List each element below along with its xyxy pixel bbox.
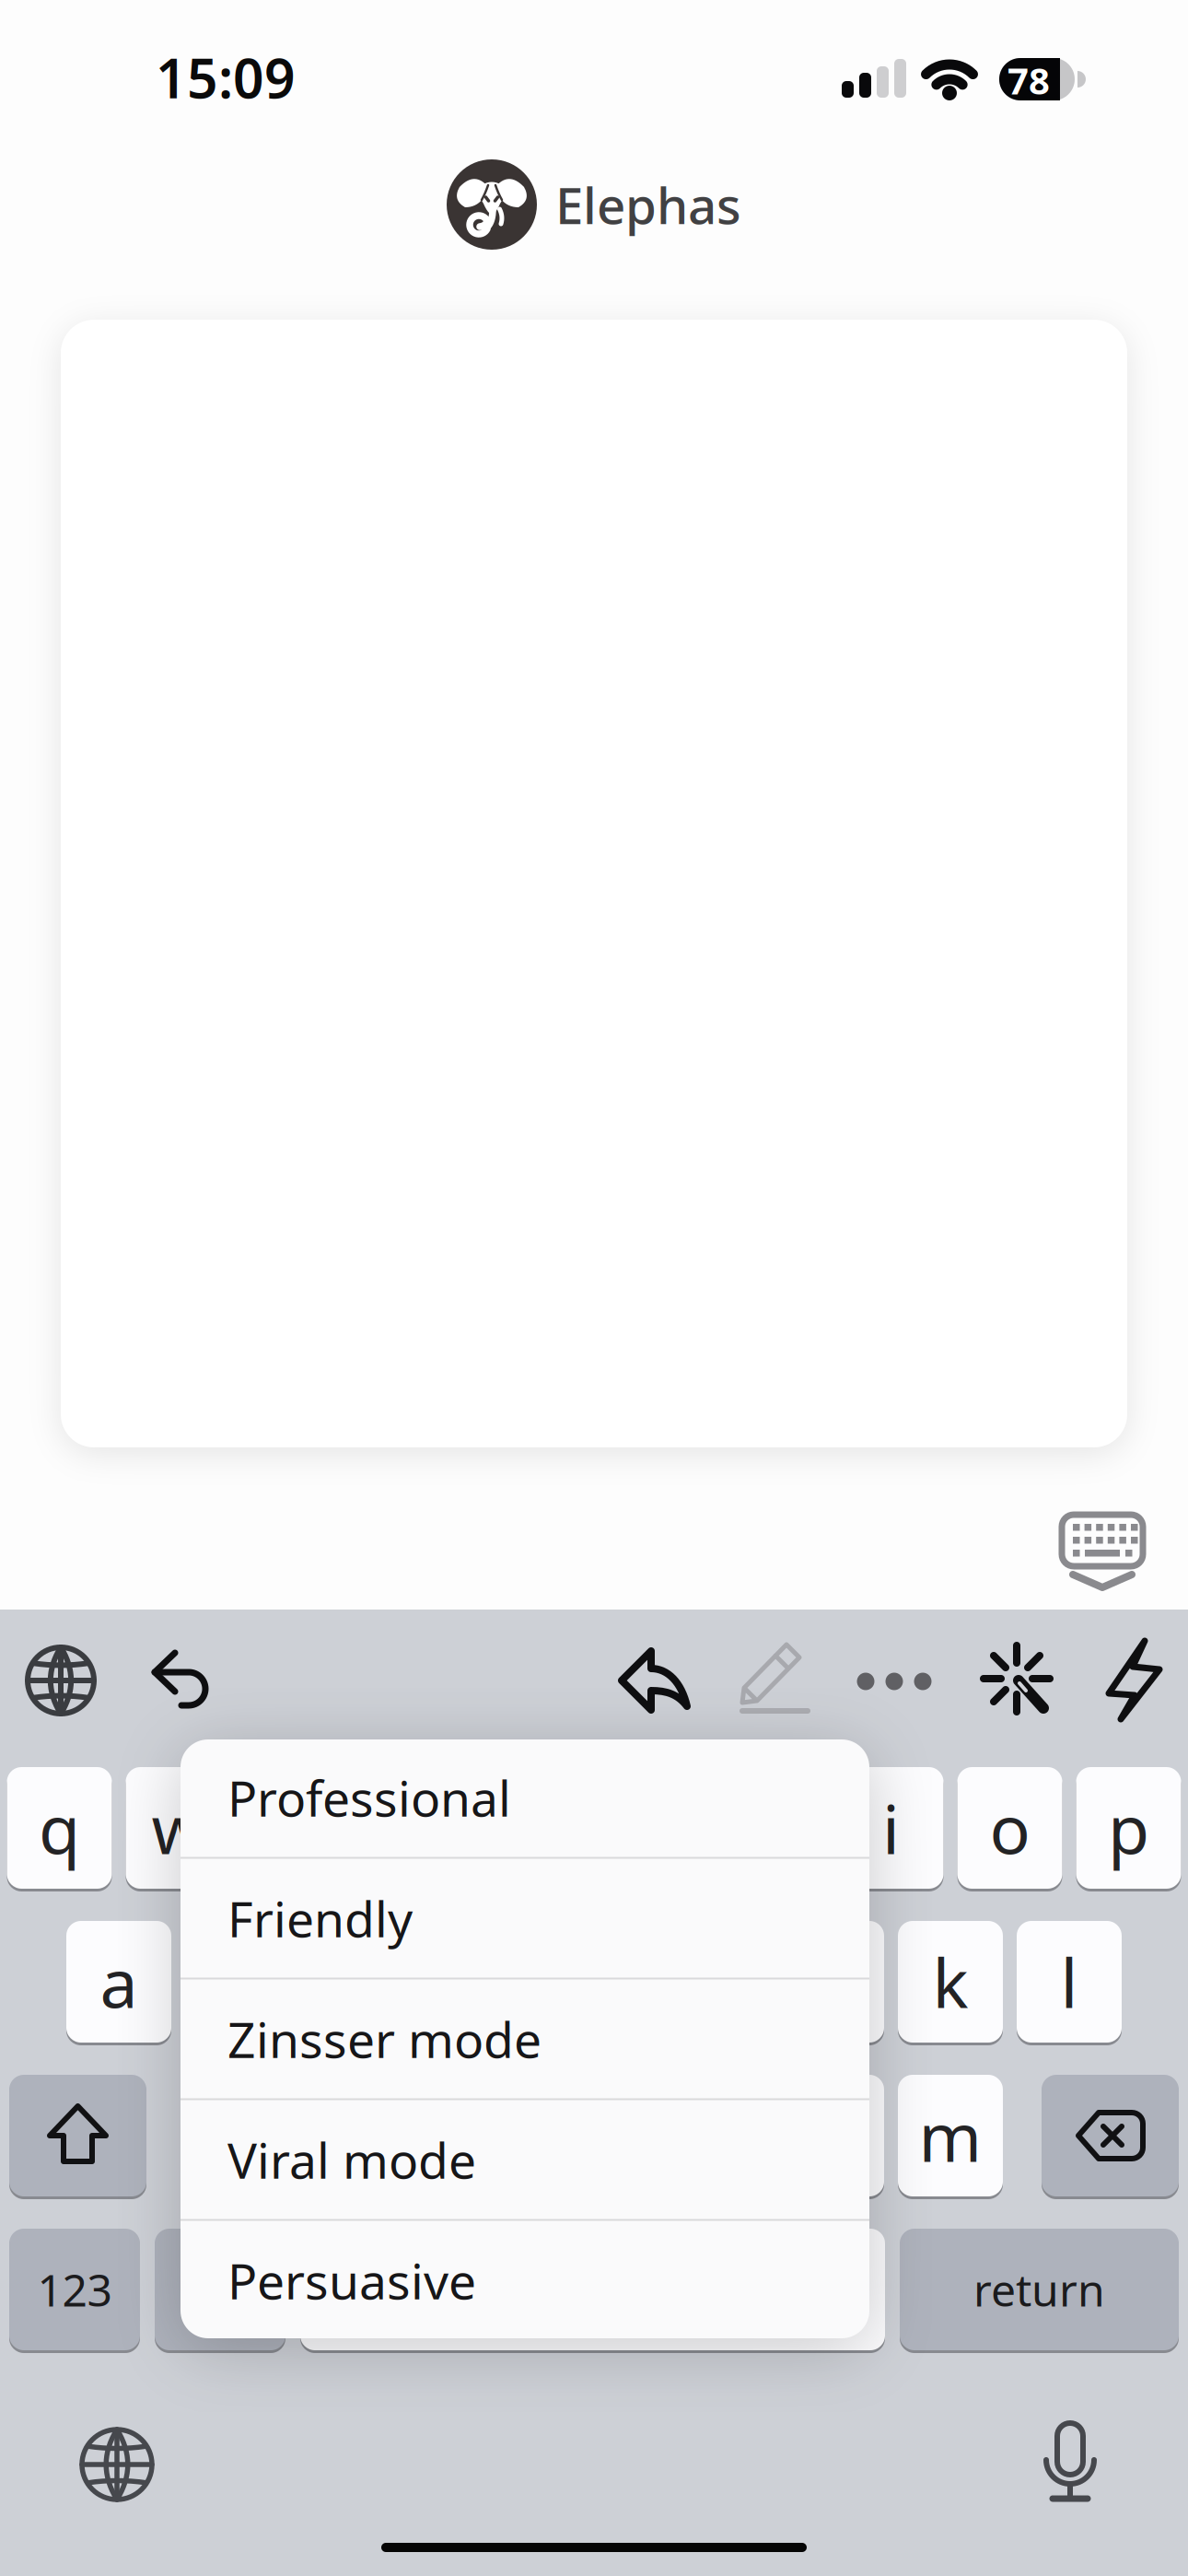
staticText: h (692, 1937, 734, 2027)
button[interactable] (959, 1630, 1060, 1731)
button[interactable]: Elephas (447, 159, 741, 250)
staticText: m (919, 2091, 982, 2180)
button[interactable] (10, 1630, 111, 1731)
staticText: c (459, 2091, 491, 2180)
button[interactable]: j (779, 1921, 884, 2043)
staticText: 123 (37, 2260, 112, 2319)
staticText: t (523, 1783, 547, 1873)
button[interactable]: Viral mode (181, 2100, 869, 2219)
staticText: a (100, 1937, 138, 2027)
button[interactable]: i (839, 1767, 943, 1889)
button[interactable]: h (660, 1921, 765, 2043)
staticText: Viral mode (227, 2127, 476, 2192)
staticText: y (636, 1783, 670, 1873)
button[interactable] (1083, 1630, 1184, 1731)
staticText: Persuasive (227, 2248, 476, 2313)
button[interactable]: b (660, 2075, 765, 2196)
staticText: Friendly (227, 1886, 413, 1951)
staticText: g (573, 1937, 615, 2027)
button[interactable]: f (423, 1921, 528, 2043)
button[interactable]: q (7, 1767, 112, 1889)
staticText: o (990, 1783, 1030, 1873)
staticText: j (823, 1937, 840, 2027)
button[interactable] (9, 2075, 146, 2196)
staticText: e (278, 1783, 316, 1873)
staticText: q (39, 1783, 80, 1873)
staticText: u (751, 1783, 793, 1873)
button[interactable]: d (304, 1921, 409, 2043)
staticText: d (336, 1937, 377, 2027)
staticText: Professional (227, 1765, 511, 1830)
staticText: i (882, 1783, 900, 1873)
button[interactable]: Professional (181, 1738, 869, 1857)
button[interactable]: w (126, 1767, 231, 1889)
staticText: 15:09 (156, 41, 296, 113)
staticText: Elephas (555, 171, 741, 238)
staticText: z (222, 2091, 253, 2180)
staticText: v (577, 2091, 611, 2180)
button[interactable]: Persuasive (181, 2221, 869, 2340)
button[interactable]: z (185, 2075, 290, 2196)
button[interactable] (1019, 2411, 1121, 2512)
button[interactable]: p (1076, 1767, 1181, 1889)
button[interactable] (66, 2414, 168, 2515)
button[interactable]: y (601, 1767, 706, 1889)
button[interactable]: x (304, 2075, 409, 2196)
button[interactable] (131, 1630, 232, 1731)
button[interactable]: a (66, 1921, 171, 2043)
button[interactable]: return (900, 2229, 1179, 2350)
staticText: w (151, 1783, 205, 1873)
staticText: 78 (1007, 56, 1050, 105)
button[interactable]: u (720, 1767, 825, 1889)
staticText: f (464, 1937, 487, 2027)
staticText: s (221, 1937, 254, 2027)
staticText: b (692, 2091, 734, 2180)
button[interactable]: g (542, 1921, 646, 2043)
staticText: l (1060, 1937, 1078, 2027)
button[interactable]: c (423, 2075, 528, 2196)
staticText: n (811, 2091, 852, 2180)
staticText: Zinsser mode (227, 2006, 542, 2071)
button[interactable]: s (185, 1921, 290, 2043)
button[interactable]: l (1017, 1921, 1122, 2043)
button[interactable]: r (363, 1767, 468, 1889)
button[interactable]: m (898, 2075, 1003, 2196)
button[interactable]: e (245, 1767, 349, 1889)
button[interactable] (155, 2229, 285, 2350)
staticText: k (932, 1937, 968, 2027)
staticText: r (402, 1783, 430, 1873)
button[interactable]: k (898, 1921, 1003, 2043)
staticText: return (973, 2260, 1105, 2319)
button[interactable]: Zinsser mode (181, 1979, 869, 2098)
staticText: x (338, 2091, 374, 2180)
button[interactable]: v (542, 2075, 646, 2196)
button[interactable]: 123 (9, 2229, 140, 2350)
button[interactable] (723, 1630, 824, 1731)
button[interactable] (1047, 1506, 1158, 1598)
button[interactable]: o (957, 1767, 1062, 1889)
button[interactable]: Friendly (181, 1859, 869, 1978)
staticText: p (1108, 1783, 1149, 1873)
button[interactable]: n (779, 2075, 884, 2196)
button[interactable] (1042, 2075, 1179, 2196)
button[interactable] (604, 1630, 705, 1731)
button[interactable]: t (482, 1767, 587, 1889)
button[interactable] (844, 1630, 945, 1731)
button[interactable] (300, 2229, 885, 2350)
